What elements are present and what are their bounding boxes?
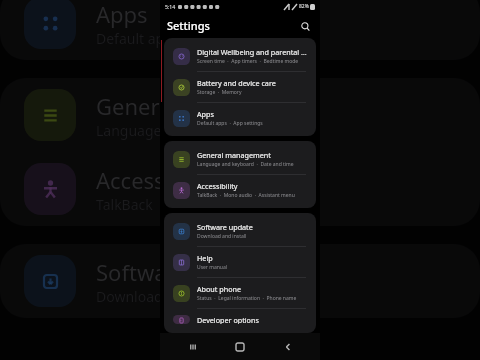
staticText: Developer options xyxy=(197,315,259,324)
button[interactable]: Help xyxy=(164,247,316,277)
staticText: Default apps · App settings xyxy=(197,120,263,127)
button[interactable]: Back xyxy=(273,333,303,360)
staticText: Help xyxy=(197,253,213,263)
staticText: User manual xyxy=(197,264,227,271)
staticText: Apps xyxy=(96,0,148,29)
staticText: Storage · Memory xyxy=(197,89,242,96)
button[interactable]: Developer options xyxy=(164,309,316,330)
staticText: Accessibility xyxy=(96,165,221,195)
button[interactable]: About phone xyxy=(164,278,316,308)
button[interactable]: Accessibility xyxy=(164,175,316,205)
staticText: Default apps xyxy=(96,29,180,48)
staticText: TalkBack · Mono audio · Assistant menu xyxy=(197,192,295,199)
staticText: Software update xyxy=(197,222,253,232)
staticText: Download and install xyxy=(197,233,247,240)
staticText: General management xyxy=(197,150,271,160)
staticText: Apps xyxy=(197,109,214,119)
staticText: Language and time xyxy=(96,121,224,140)
staticText: Digital Wellbeing and parental controls xyxy=(197,47,308,57)
button[interactable]: Battery and device care xyxy=(164,72,316,102)
button[interactable]: Apps xyxy=(164,103,316,133)
staticText: 82% xyxy=(299,3,309,10)
staticText: Settings xyxy=(167,18,210,33)
staticText: TalkBack xyxy=(96,195,153,214)
staticText: Battery and device care xyxy=(197,78,276,88)
staticText: Status · Legal information · Phone name xyxy=(197,295,297,302)
staticText: Accessibility xyxy=(197,181,238,191)
staticText: Software xyxy=(96,257,188,287)
button[interactable]: Software update xyxy=(164,216,316,246)
staticText: Language and keyboard · Date and time xyxy=(197,161,294,168)
staticText: 5:14 xyxy=(165,3,176,10)
button[interactable]: Home xyxy=(225,333,255,360)
staticText: General xyxy=(96,91,178,121)
button[interactable]: Recents xyxy=(178,333,208,360)
staticText: Screen time · App timers · Bedtime mode xyxy=(197,58,299,65)
button[interactable]: General management xyxy=(164,144,316,174)
staticText: Download xyxy=(96,287,163,306)
button[interactable]: Digital Wellbeing and parental controls xyxy=(164,41,316,71)
button[interactable]: Search xyxy=(297,18,313,34)
staticText: About phone xyxy=(197,284,241,294)
